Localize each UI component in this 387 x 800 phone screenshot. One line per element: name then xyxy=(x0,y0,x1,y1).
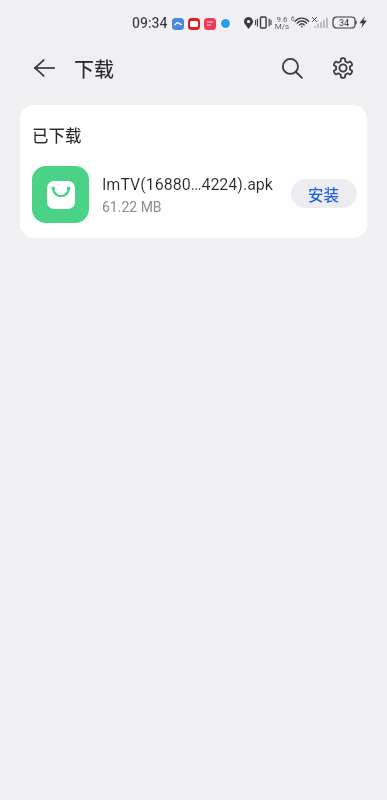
staticText: M/s xyxy=(274,22,290,31)
staticText: 6 xyxy=(291,15,295,23)
staticText: 9.6 xyxy=(274,15,290,24)
button[interactable]: Back xyxy=(20,44,68,92)
staticText: ImTV(16880…4224).apk xyxy=(102,175,273,194)
staticText: 下载 xyxy=(74,54,114,83)
staticText: 安装 xyxy=(308,183,340,205)
staticText: 09:34 xyxy=(132,15,168,31)
staticText: 61.22 MB xyxy=(102,199,162,215)
button[interactable]: Settings xyxy=(319,44,367,92)
button[interactable]: Search xyxy=(268,44,316,92)
button[interactable]: 安装 xyxy=(291,179,357,208)
staticText: 已下载 xyxy=(32,123,82,147)
button[interactable]: ImTV(16880…4224).apk xyxy=(20,158,367,226)
staticText: 34 xyxy=(336,18,352,29)
